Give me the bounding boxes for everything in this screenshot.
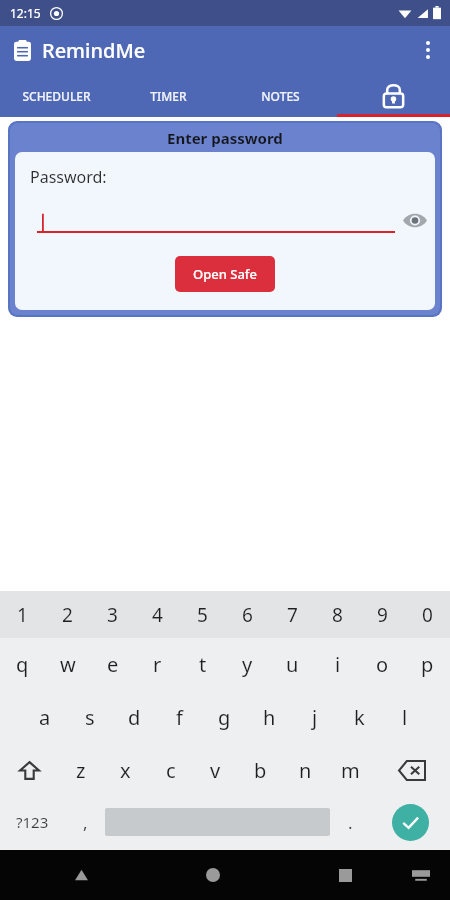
staticText: SCHEDULER bbox=[22, 88, 91, 104]
button[interactable]: t bbox=[180, 638, 225, 691]
button[interactable]: d bbox=[112, 691, 157, 744]
staticText: Password: bbox=[30, 166, 107, 188]
staticText: TIMER bbox=[150, 88, 187, 104]
button[interactable]: r bbox=[135, 638, 180, 691]
button[interactable]: Switch keyboard bbox=[392, 850, 450, 900]
button[interactable]: . bbox=[330, 797, 370, 847]
button[interactable]: 1 bbox=[0, 591, 45, 638]
staticText: e bbox=[107, 651, 119, 678]
staticText: k bbox=[354, 704, 365, 731]
staticText: 9 bbox=[377, 602, 388, 628]
staticText: d bbox=[128, 704, 141, 731]
button[interactable]: j bbox=[292, 691, 337, 744]
button[interactable]: NOTES bbox=[224, 74, 337, 117]
button[interactable]: p bbox=[405, 638, 450, 691]
button[interactable]: TIMER bbox=[112, 74, 224, 117]
button[interactable]: l bbox=[382, 691, 427, 744]
staticText: 4 bbox=[152, 602, 163, 628]
button[interactable]: 6 bbox=[225, 591, 270, 638]
staticText: w bbox=[60, 651, 76, 678]
staticText: n bbox=[299, 757, 312, 784]
staticText: h bbox=[263, 704, 276, 731]
staticText: 2 bbox=[62, 602, 73, 628]
staticText: p bbox=[421, 651, 434, 678]
button[interactable]: v bbox=[193, 744, 238, 797]
button[interactable]: 5 bbox=[180, 591, 225, 638]
button[interactable]: Delete bbox=[373, 744, 450, 797]
button[interactable]: Open Safe bbox=[175, 256, 275, 292]
button[interactable]: Enter bbox=[370, 797, 450, 847]
staticText: c bbox=[166, 757, 176, 784]
staticText: NOTES bbox=[261, 88, 300, 104]
staticText: i bbox=[335, 651, 341, 678]
button[interactable]: q bbox=[0, 638, 45, 691]
button[interactable]: i bbox=[315, 638, 360, 691]
button[interactable]: SCHEDULER bbox=[0, 74, 112, 117]
button[interactable]: 8 bbox=[315, 591, 360, 638]
staticText: u bbox=[286, 651, 299, 678]
button[interactable]: h bbox=[247, 691, 292, 744]
button[interactable]: Back bbox=[52, 850, 110, 900]
staticText: t bbox=[199, 651, 207, 678]
button[interactable]: Shift bbox=[0, 744, 58, 797]
button[interactable]: 9 bbox=[360, 591, 405, 638]
staticText: , bbox=[83, 811, 88, 834]
staticText: o bbox=[376, 651, 389, 678]
staticText: r bbox=[153, 651, 162, 678]
staticText: 12:15 bbox=[10, 5, 41, 21]
button[interactable]: 7 bbox=[270, 591, 315, 638]
button[interactable]: m bbox=[328, 744, 373, 797]
button[interactable]: k bbox=[337, 691, 382, 744]
staticText: z bbox=[76, 757, 86, 784]
staticText: 0 bbox=[422, 602, 433, 628]
staticText: s bbox=[85, 704, 95, 731]
button[interactable]: 4 bbox=[135, 591, 180, 638]
button[interactable]: , bbox=[65, 797, 105, 847]
staticText: m bbox=[341, 757, 360, 784]
staticText: q bbox=[16, 651, 29, 678]
button[interactable]: o bbox=[360, 638, 405, 691]
staticText: ?123 bbox=[16, 812, 49, 832]
button[interactable]: 3 bbox=[90, 591, 135, 638]
button[interactable]: a bbox=[22, 691, 67, 744]
button[interactable]: More options bbox=[406, 28, 450, 72]
staticText: v bbox=[210, 757, 221, 784]
button[interactable]: e bbox=[90, 638, 135, 691]
staticText: RemindMe bbox=[42, 37, 146, 64]
button[interactable]: y bbox=[225, 638, 270, 691]
button[interactable]: 0 bbox=[405, 591, 450, 638]
staticText: . bbox=[348, 811, 353, 834]
button[interactable]: ?123 bbox=[0, 797, 65, 847]
staticText: j bbox=[312, 704, 318, 731]
staticText: 1 bbox=[17, 602, 28, 628]
staticText: 8 bbox=[332, 602, 343, 628]
button[interactable]: Safe bbox=[337, 74, 450, 117]
button[interactable]: n bbox=[283, 744, 328, 797]
staticText: Open Safe bbox=[193, 265, 257, 283]
staticText: 7 bbox=[287, 602, 298, 628]
staticText: 6 bbox=[242, 602, 253, 628]
staticText: g bbox=[218, 704, 231, 731]
staticText: 5 bbox=[197, 602, 208, 628]
button[interactable]: s bbox=[67, 691, 112, 744]
button[interactable]: Show password bbox=[395, 200, 435, 240]
button[interactable]: f bbox=[157, 691, 202, 744]
staticText: x bbox=[120, 757, 131, 784]
button[interactable]: u bbox=[270, 638, 315, 691]
staticText: f bbox=[176, 704, 183, 731]
button[interactable]: g bbox=[202, 691, 247, 744]
staticText: l bbox=[402, 704, 408, 731]
button[interactable]: Home bbox=[184, 850, 242, 900]
button[interactable]: Recents bbox=[316, 850, 374, 900]
staticText: b bbox=[254, 757, 267, 784]
staticText: a bbox=[39, 704, 51, 731]
button[interactable]: 2 bbox=[45, 591, 90, 638]
button[interactable]: c bbox=[148, 744, 193, 797]
button[interactable]: b bbox=[238, 744, 283, 797]
button[interactable]: z bbox=[58, 744, 103, 797]
staticText: Enter password bbox=[167, 128, 283, 148]
button[interactable]: x bbox=[103, 744, 148, 797]
staticText: y bbox=[242, 651, 253, 678]
button[interactable]: w bbox=[45, 638, 90, 691]
